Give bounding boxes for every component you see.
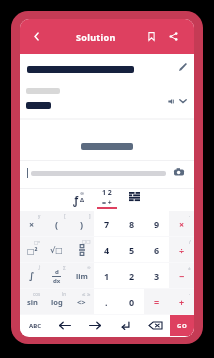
staticText: lim: [76, 271, 88, 281]
staticText: GO: [177, 322, 188, 330]
button[interactable]: log: [44, 289, 69, 315]
button[interactable]: Move cursor right: [80, 315, 110, 336]
button[interactable]: Keypad tab: [67, 188, 93, 211]
staticText: cos: [33, 291, 41, 297]
staticText: .: [105, 296, 108, 308]
button[interactable]: GO: [170, 315, 194, 336]
staticText: ∫: [38, 265, 41, 270]
staticText: (: [55, 218, 59, 230]
button[interactable]: d: [44, 263, 69, 289]
staticText: ln: [62, 291, 66, 297]
staticText: ∫: [29, 271, 35, 281]
button[interactable]: lim: [69, 263, 94, 289]
staticText: ABC: [29, 322, 41, 330]
button[interactable]: ): [69, 211, 94, 237]
staticText: = +: [102, 198, 112, 205]
button[interactable]: ×: [20, 211, 44, 237]
staticText: sin: [27, 297, 38, 307]
button[interactable]: 9: [144, 211, 169, 237]
staticText: Solution: [76, 31, 116, 43]
staticText: ): [80, 218, 84, 230]
button[interactable]: □□: [69, 237, 94, 263]
button[interactable]: ÷: [169, 237, 194, 263]
button[interactable]: =: [144, 289, 169, 315]
staticText: 1 2: [102, 188, 112, 198]
staticText: =: [154, 296, 160, 308]
button[interactable]: □²: [20, 237, 44, 263]
staticText: ×: [179, 218, 185, 230]
button[interactable]: 3: [144, 263, 169, 289]
staticText: ≤ ≥: [82, 291, 91, 297]
button[interactable]: 0: [119, 289, 144, 315]
button[interactable]: 8: [119, 211, 144, 237]
staticText: 5: [129, 244, 135, 256]
staticText: ]: [89, 213, 91, 219]
staticText: 6: [154, 244, 160, 256]
button[interactable]: <>: [69, 289, 94, 315]
button[interactable]: ×: [169, 211, 194, 237]
button[interactable]: Share: [162, 19, 184, 54]
button[interactable]: +: [169, 289, 194, 315]
staticText: 8: [129, 218, 135, 230]
staticText: ƒ: [73, 193, 79, 207]
staticText: Σ: [63, 265, 66, 271]
staticText: ·: [189, 213, 191, 219]
staticText: log: [51, 297, 63, 307]
staticText: 9: [154, 218, 160, 230]
staticText: 3: [154, 270, 160, 282]
button[interactable]: sin: [20, 289, 44, 315]
staticText: □ⁿ: [34, 239, 41, 245]
button[interactable]: 2: [119, 263, 144, 289]
staticText: ×: [29, 218, 35, 230]
staticText: ÷: [179, 244, 185, 256]
button[interactable]: Keypad tab: [121, 188, 147, 211]
button[interactable]: Move cursor left: [50, 315, 80, 336]
staticText: ±: [188, 265, 191, 271]
staticText: □□: [82, 239, 91, 244]
button[interactable]: .: [94, 289, 119, 315]
staticText: ∞: [87, 265, 91, 270]
button[interactable]: Edit: [175, 59, 191, 75]
staticText: √□: [50, 246, 63, 255]
button[interactable]: Keypad tab: [94, 188, 120, 211]
staticText: 0: [129, 296, 135, 308]
staticText: Δ: [80, 196, 85, 204]
button[interactable]: Listen: [164, 94, 178, 108]
button[interactable]: ∫: [20, 263, 44, 289]
staticText: dx: [53, 277, 61, 285]
button[interactable]: 5: [119, 237, 144, 263]
button[interactable]: Backspace: [140, 315, 170, 336]
button[interactable]: 7: [94, 211, 119, 237]
staticText: ·: [189, 291, 191, 297]
button[interactable]: ABC: [20, 315, 50, 336]
staticText: +: [179, 296, 185, 308]
staticText: 7: [104, 218, 110, 230]
button[interactable]: (: [44, 211, 69, 237]
staticText: 2: [129, 270, 135, 282]
staticText: □²: [27, 245, 38, 256]
button[interactable]: Back: [20, 19, 52, 54]
staticText: [: [64, 213, 66, 219]
staticText: <>: [77, 297, 86, 307]
staticText: /: [189, 239, 191, 245]
button[interactable]: Enter: [110, 315, 140, 336]
button[interactable]: 6: [144, 237, 169, 263]
button[interactable]: 1: [94, 263, 119, 289]
staticText: ∞: [80, 190, 85, 196]
button[interactable]: 4: [94, 237, 119, 263]
button[interactable]: √□: [44, 237, 69, 263]
staticText: y: [38, 213, 41, 219]
button[interactable]: Bookmark: [140, 19, 162, 54]
staticText: 4: [104, 244, 110, 256]
button[interactable]: −: [169, 263, 194, 289]
button[interactable]: Scan with camera: [170, 163, 188, 181]
button[interactable]: Expand: [176, 94, 190, 108]
staticText: −: [179, 270, 185, 282]
staticText: 1: [104, 270, 110, 282]
staticText: d: [55, 268, 59, 276]
